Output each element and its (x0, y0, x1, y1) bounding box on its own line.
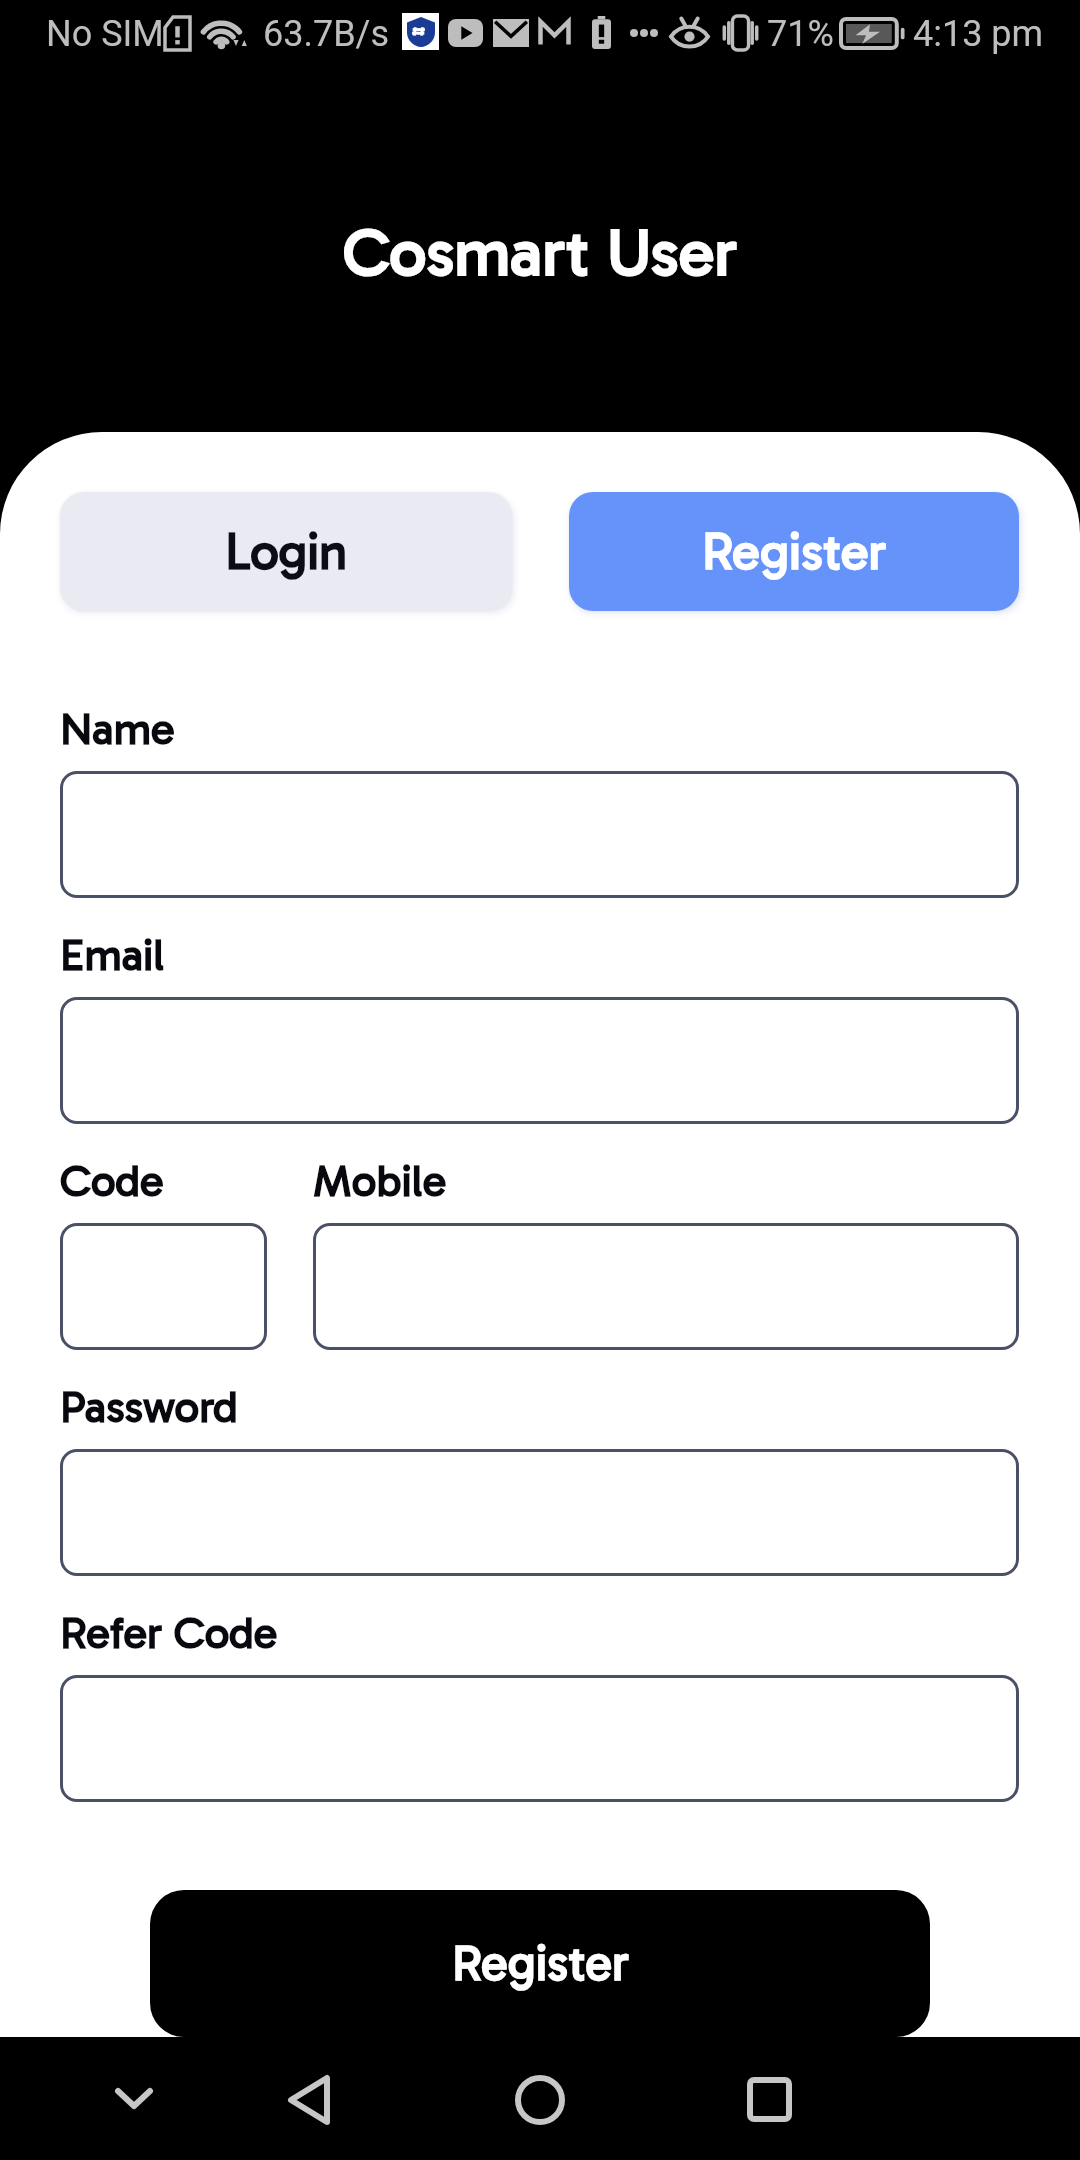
button[interactable]: Recent apps (709, 2057, 829, 2141)
button[interactable]: Back (249, 2058, 369, 2142)
button[interactable]: Register (150, 1890, 930, 2037)
button[interactable] (60, 997, 1019, 1124)
staticText: Password (60, 1381, 238, 1434)
staticText: Register (702, 521, 887, 582)
button[interactable]: Hide keyboard (74, 2056, 194, 2140)
staticText: Register (452, 1934, 629, 1993)
staticText: 63.7B/s (263, 13, 390, 55)
button[interactable] (60, 1449, 1019, 1576)
button[interactable]: Login (60, 492, 512, 611)
button[interactable] (60, 1675, 1019, 1802)
staticText: Login (225, 521, 348, 582)
staticText: Name (60, 703, 175, 756)
staticText: Email (60, 929, 165, 982)
staticText: 71% (767, 13, 834, 55)
button[interactable]: Home (480, 2058, 600, 2142)
button[interactable]: Register (569, 492, 1019, 611)
staticText: 4:13 pm (913, 13, 1044, 55)
staticText: No SIM (46, 13, 164, 55)
staticText: Mobile (313, 1155, 447, 1208)
staticText: Cosmart User (0, 213, 1080, 292)
button[interactable] (60, 771, 1019, 898)
staticText: Refer Code (60, 1607, 278, 1660)
button[interactable] (60, 1223, 267, 1350)
staticText: Code (60, 1155, 164, 1208)
button[interactable] (313, 1223, 1019, 1350)
